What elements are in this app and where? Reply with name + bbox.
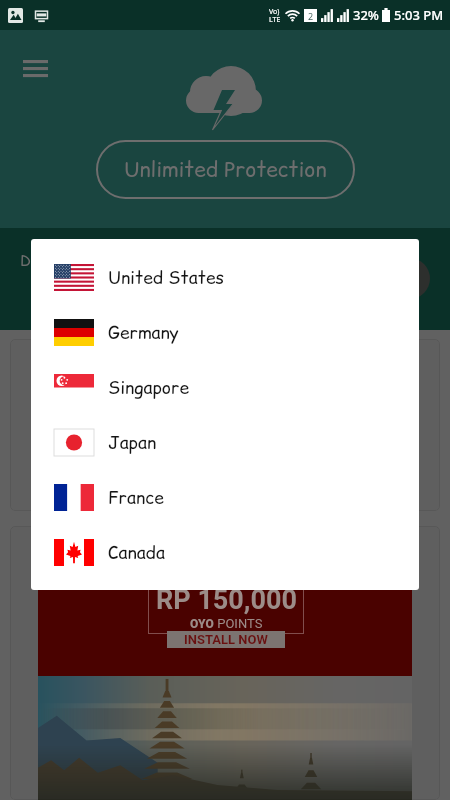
- staticText: Japan: [108, 431, 157, 455]
- button[interactable]: Connect: [389, 258, 430, 299]
- button[interactable]: Unlimited Protection: [96, 140, 355, 199]
- staticText: OYO: [190, 617, 214, 631]
- button[interactable]: INSTALL NOW: [167, 631, 285, 648]
- staticText: Unlimited Protection: [124, 155, 327, 184]
- button[interactable]: Germany: [31, 305, 419, 360]
- button[interactable]: Singapore: [31, 360, 419, 415]
- button[interactable]: Canada: [31, 525, 419, 580]
- button[interactable]: United States: [31, 250, 419, 305]
- staticText: 32%: [353, 6, 379, 24]
- staticText: Disconnected: [20, 250, 114, 271]
- staticText: Canada: [108, 541, 165, 565]
- button[interactable]: Japan: [31, 415, 419, 470]
- button[interactable]: Menu: [11, 44, 59, 92]
- staticText: Vo) LTE: [269, 7, 281, 24]
- staticText: United States: [108, 266, 224, 290]
- staticText: RP 150,000: [156, 584, 297, 616]
- staticText: Germany: [108, 321, 179, 345]
- staticText: France: [108, 486, 164, 510]
- button[interactable]: France: [31, 470, 419, 525]
- staticText: INSTALL NOW: [184, 632, 268, 647]
- staticText: Singapore: [108, 376, 189, 400]
- staticText: 2: [308, 10, 314, 22]
- button[interactable]: [10, 339, 440, 511]
- staticText: 5:03 PM: [394, 6, 444, 24]
- button[interactable]: RP 150,000: [10, 526, 440, 800]
- staticText: POINTS: [214, 616, 263, 631]
